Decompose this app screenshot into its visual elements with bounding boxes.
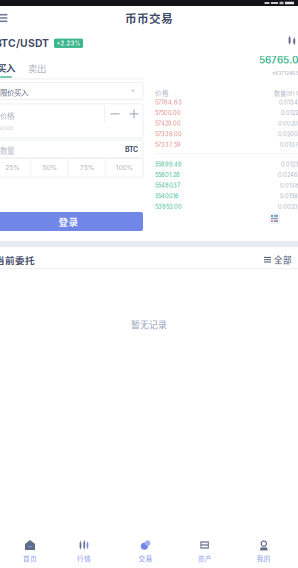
staticText: 57337.59: [155, 141, 181, 148]
staticText: ≈¥371240.55: [272, 70, 298, 76]
button[interactable]: 75%: [68, 158, 106, 177]
staticText: 0.01235: [281, 161, 298, 168]
staticText: ¥0.00: [0, 125, 13, 131]
staticText: 限价买入: [0, 87, 28, 98]
staticText: 57338.00: [155, 131, 182, 137]
button[interactable]: 登录: [0, 212, 143, 231]
staticText: 55899.46: [155, 161, 182, 168]
button[interactable]: 交易: [119, 533, 173, 568]
staticText: 75%: [80, 163, 95, 172]
staticText: 当前委托: [0, 253, 35, 267]
staticText: 0.00200: [278, 120, 298, 127]
button[interactable]: Decrease price: [107, 104, 123, 124]
staticText: 行情: [77, 553, 91, 563]
staticText: 价格: [0, 110, 14, 121]
button[interactable]: 25%: [0, 158, 31, 177]
staticText: 55480.37: [155, 182, 180, 189]
staticText: 0.02466: [278, 171, 298, 178]
staticText: 首页: [23, 553, 37, 563]
staticText: 资产: [198, 553, 212, 563]
button[interactable]: Menu: [0, 6, 10, 30]
staticText: 数量(BTC): [274, 88, 298, 97]
staticText: 100%: [115, 163, 133, 172]
staticText: 0.00230: [278, 203, 298, 210]
button[interactable]: 我的: [237, 533, 291, 568]
staticText: 卖出: [28, 61, 46, 75]
staticText: BTC/USDT: [0, 37, 49, 50]
staticText: 登录: [58, 214, 78, 228]
button[interactable]: 首页: [3, 533, 57, 568]
button[interactable]: Market chart: [288, 35, 298, 45]
staticText: 0.02000: [278, 131, 298, 137]
staticText: 55801.28: [155, 171, 180, 178]
staticText: 交易: [139, 553, 153, 563]
staticText: 价格: [155, 88, 169, 97]
staticText: 我的: [257, 553, 271, 563]
staticText: 56765.07: [259, 54, 298, 66]
staticText: 暂无记录: [131, 318, 167, 331]
staticText: 币币交易: [125, 9, 173, 26]
staticText: +2.23%: [56, 40, 80, 47]
staticText: 0.01340: [279, 99, 298, 106]
button[interactable]: 50%: [31, 158, 68, 177]
staticText: 0.01229: [281, 109, 298, 116]
staticText: 57500.00: [155, 109, 181, 116]
staticText: 数量: [0, 145, 14, 156]
button[interactable]: Increase price: [126, 104, 142, 124]
button[interactable]: 限价买入: [0, 82, 143, 99]
staticText: 0.01584: [280, 193, 298, 199]
staticText: 57429.00: [155, 120, 181, 127]
button[interactable]: 100%: [106, 158, 143, 177]
staticText: BTC: [125, 145, 138, 154]
staticText: 全部: [274, 253, 292, 266]
button[interactable]: 卖出: [25, 50, 49, 75]
staticText: 0.01374: [280, 141, 298, 148]
button[interactable]: 全部: [264, 253, 292, 266]
button[interactable]: 资产: [178, 533, 232, 568]
staticText: 55400.16: [155, 193, 179, 199]
staticText: 0.01385: [280, 182, 298, 189]
staticText: 50%: [42, 163, 57, 172]
button[interactable]: 买入: [0, 50, 18, 78]
button[interactable]: Order book depth: [269, 213, 280, 224]
button[interactable]: 行情: [57, 533, 111, 568]
staticText: 57764.63: [155, 99, 182, 106]
button[interactable]: 暂无记录: [131, 318, 167, 331]
staticText: 53953.00: [155, 203, 182, 210]
staticText: 买入: [0, 61, 15, 74]
staticText: 25%: [5, 163, 20, 172]
